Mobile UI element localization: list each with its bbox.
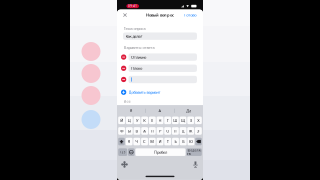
staticText: Плохо bbox=[131, 66, 142, 71]
button[interactable]: Й bbox=[118, 116, 125, 124]
staticText: Д bbox=[181, 128, 184, 134]
staticText: И bbox=[158, 139, 161, 144]
button[interactable]: О bbox=[164, 127, 171, 135]
staticText: С bbox=[143, 139, 146, 144]
staticText: Я bbox=[130, 108, 133, 113]
button[interactable]: Диктовка bbox=[191, 160, 200, 169]
button[interactable]: К bbox=[141, 116, 148, 124]
staticText: 123 bbox=[120, 150, 126, 154]
staticText: Э bbox=[197, 128, 200, 134]
staticText: Т bbox=[167, 139, 169, 144]
button[interactable]: М bbox=[149, 138, 156, 145]
staticText: П bbox=[151, 128, 154, 134]
button[interactable]: Сменить язык bbox=[128, 148, 135, 156]
staticText: Б bbox=[182, 139, 184, 144]
button[interactable]: Ф bbox=[118, 127, 125, 135]
button[interactable]: Эмодзи bbox=[120, 160, 129, 169]
button[interactable]: Г bbox=[164, 116, 171, 124]
staticText: Е bbox=[151, 118, 153, 123]
staticText: Н bbox=[158, 118, 161, 123]
button[interactable]: Ж bbox=[187, 127, 194, 135]
staticText: В bbox=[135, 128, 138, 134]
button[interactable]: И bbox=[156, 138, 163, 145]
staticText: Готово bbox=[184, 12, 196, 18]
staticText: 09:41 bbox=[128, 4, 137, 8]
button[interactable]: Ы bbox=[126, 127, 133, 135]
staticText: Как дела? bbox=[126, 33, 143, 39]
staticText: Да bbox=[186, 108, 191, 113]
staticText: Новый вопрос bbox=[146, 12, 174, 18]
staticText: Ю bbox=[189, 139, 193, 144]
staticText: Я bbox=[128, 139, 131, 144]
staticText: З bbox=[190, 118, 192, 123]
button[interactable]: Удалить вариант bbox=[121, 77, 126, 82]
button[interactable]: Я bbox=[117, 105, 145, 116]
button[interactable]: Щ bbox=[180, 116, 186, 124]
staticText: Пробел bbox=[154, 149, 167, 155]
staticText: А bbox=[143, 128, 146, 134]
button[interactable]: Добавить вариант bbox=[117, 87, 203, 96]
button[interactable]: Ь bbox=[172, 138, 179, 145]
button[interactable]: Готово bbox=[183, 11, 197, 19]
button[interactable]: У bbox=[133, 116, 140, 124]
staticText: М bbox=[150, 139, 154, 144]
staticText: Ц bbox=[128, 118, 131, 123]
button[interactable]: Т bbox=[164, 138, 171, 145]
staticText: Ш bbox=[173, 118, 177, 123]
button[interactable]: Х bbox=[195, 116, 202, 124]
staticText: Й bbox=[120, 118, 123, 123]
button[interactable]: Ш bbox=[172, 116, 179, 124]
button[interactable]: Удалить bbox=[195, 138, 202, 145]
button[interactable]: Р bbox=[157, 127, 163, 135]
button[interactable]: Закрыть bbox=[121, 11, 129, 19]
staticText: Л bbox=[174, 128, 177, 134]
button[interactable]: Ц bbox=[126, 116, 133, 124]
button[interactable]: Л bbox=[172, 127, 179, 135]
staticText: У bbox=[136, 118, 138, 123]
staticText: Продолжить bbox=[187, 149, 202, 156]
staticText: Щ bbox=[181, 118, 185, 123]
staticText: А bbox=[158, 108, 161, 113]
staticText: Ж bbox=[189, 128, 193, 134]
staticText: Добавить вариант bbox=[128, 90, 160, 95]
button[interactable]: Н bbox=[157, 116, 163, 124]
button[interactable]: Я bbox=[126, 138, 132, 145]
button[interactable]: Ч bbox=[133, 138, 140, 145]
button[interactable]: Б bbox=[180, 138, 187, 145]
button[interactable]: Shift bbox=[118, 138, 125, 145]
staticText: Все bbox=[123, 98, 130, 104]
button[interactable]: С bbox=[141, 138, 148, 145]
staticText: Отлично bbox=[131, 54, 146, 60]
staticText: Ы bbox=[128, 128, 131, 134]
button[interactable]: Е bbox=[149, 116, 156, 124]
button[interactable]: В bbox=[133, 127, 140, 135]
staticText: Тема опроса bbox=[123, 26, 145, 31]
button[interactable]: Удалить вариант bbox=[121, 66, 126, 71]
button[interactable]: Продолжить bbox=[186, 148, 202, 156]
button[interactable]: А bbox=[141, 127, 148, 135]
staticText: Ф bbox=[120, 128, 123, 134]
staticText: Ь bbox=[174, 139, 176, 144]
button[interactable]: Д bbox=[180, 127, 186, 135]
button[interactable]: Пробел bbox=[135, 148, 185, 156]
staticText: Варианты ответа bbox=[123, 45, 154, 50]
button[interactable]: Да bbox=[175, 105, 203, 116]
staticText: Х bbox=[197, 118, 199, 123]
button[interactable]: Удалить вариант bbox=[121, 54, 126, 60]
button[interactable]: 123 bbox=[118, 148, 127, 156]
button[interactable]: А bbox=[146, 105, 174, 116]
button[interactable]: Ю bbox=[187, 138, 194, 145]
button[interactable]: Э bbox=[195, 127, 202, 135]
button[interactable]: П bbox=[149, 127, 156, 135]
staticText: Ч bbox=[135, 139, 138, 144]
button[interactable]: З bbox=[187, 116, 194, 124]
staticText: Р bbox=[159, 128, 161, 134]
staticText: К bbox=[143, 118, 146, 123]
staticText: Г bbox=[167, 118, 169, 123]
staticText: О bbox=[166, 128, 169, 134]
